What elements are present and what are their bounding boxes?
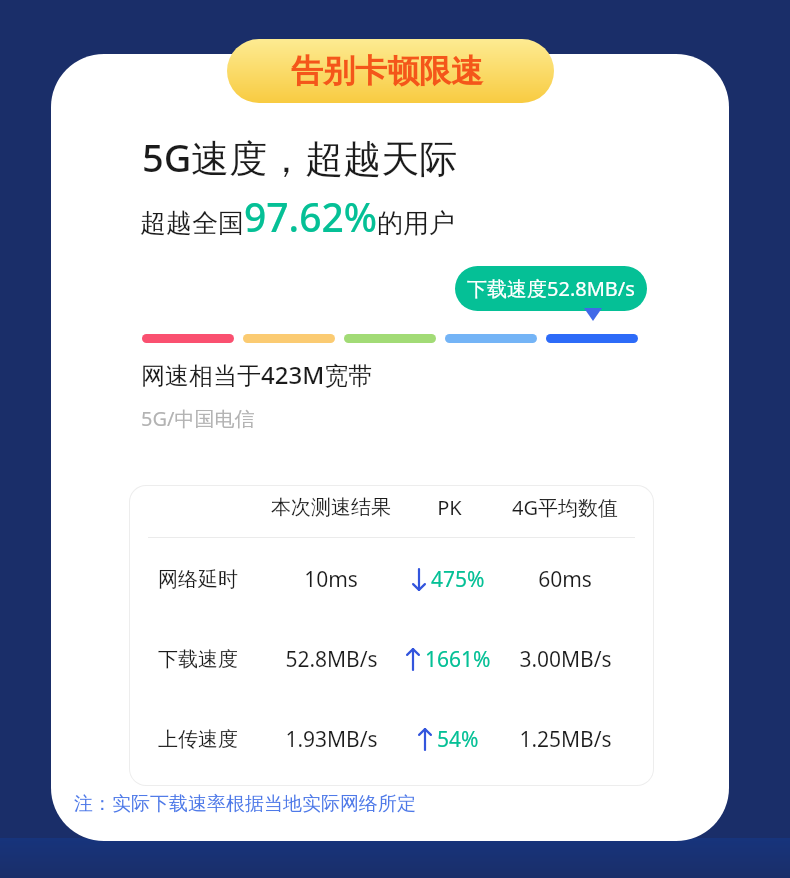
staticText: 5G速度，超越天际 [142, 131, 458, 183]
staticText: 60ms [538, 565, 592, 594]
staticText: PK [437, 494, 462, 521]
staticText: 4G平均数值 [512, 494, 618, 521]
staticText: 告别卡顿限速 [291, 51, 483, 91]
staticText: 5G/中国电信 [141, 405, 255, 432]
staticText: 54% [437, 725, 479, 754]
staticText: 本次测速结果 [271, 495, 391, 520]
staticText: 注：实际下载速率根据当地实际网络所定 [74, 792, 416, 816]
button[interactable]: 下载速度52.8MB/s [455, 266, 647, 311]
button[interactable]: 告别卡顿限速 [227, 39, 554, 103]
staticText: 3.00MB/s [519, 645, 612, 674]
staticText: 网络延时 [158, 567, 238, 592]
staticText: 1.25MB/s [519, 725, 612, 754]
staticText: 超越全国97.62%的用户 [140, 190, 456, 243]
staticText: 下载速度52.8MB/s [467, 275, 635, 302]
staticText: 1661% [425, 645, 491, 674]
staticText: 网速相当于423M宽带 [141, 358, 373, 391]
staticText: 上传速度 [158, 727, 238, 752]
staticText: 475% [431, 565, 485, 594]
staticText: 1.93MB/s [285, 725, 378, 754]
staticText: 10ms [304, 565, 358, 594]
staticText: 下载速度 [158, 647, 238, 672]
staticText: 52.8MB/s [285, 645, 378, 674]
